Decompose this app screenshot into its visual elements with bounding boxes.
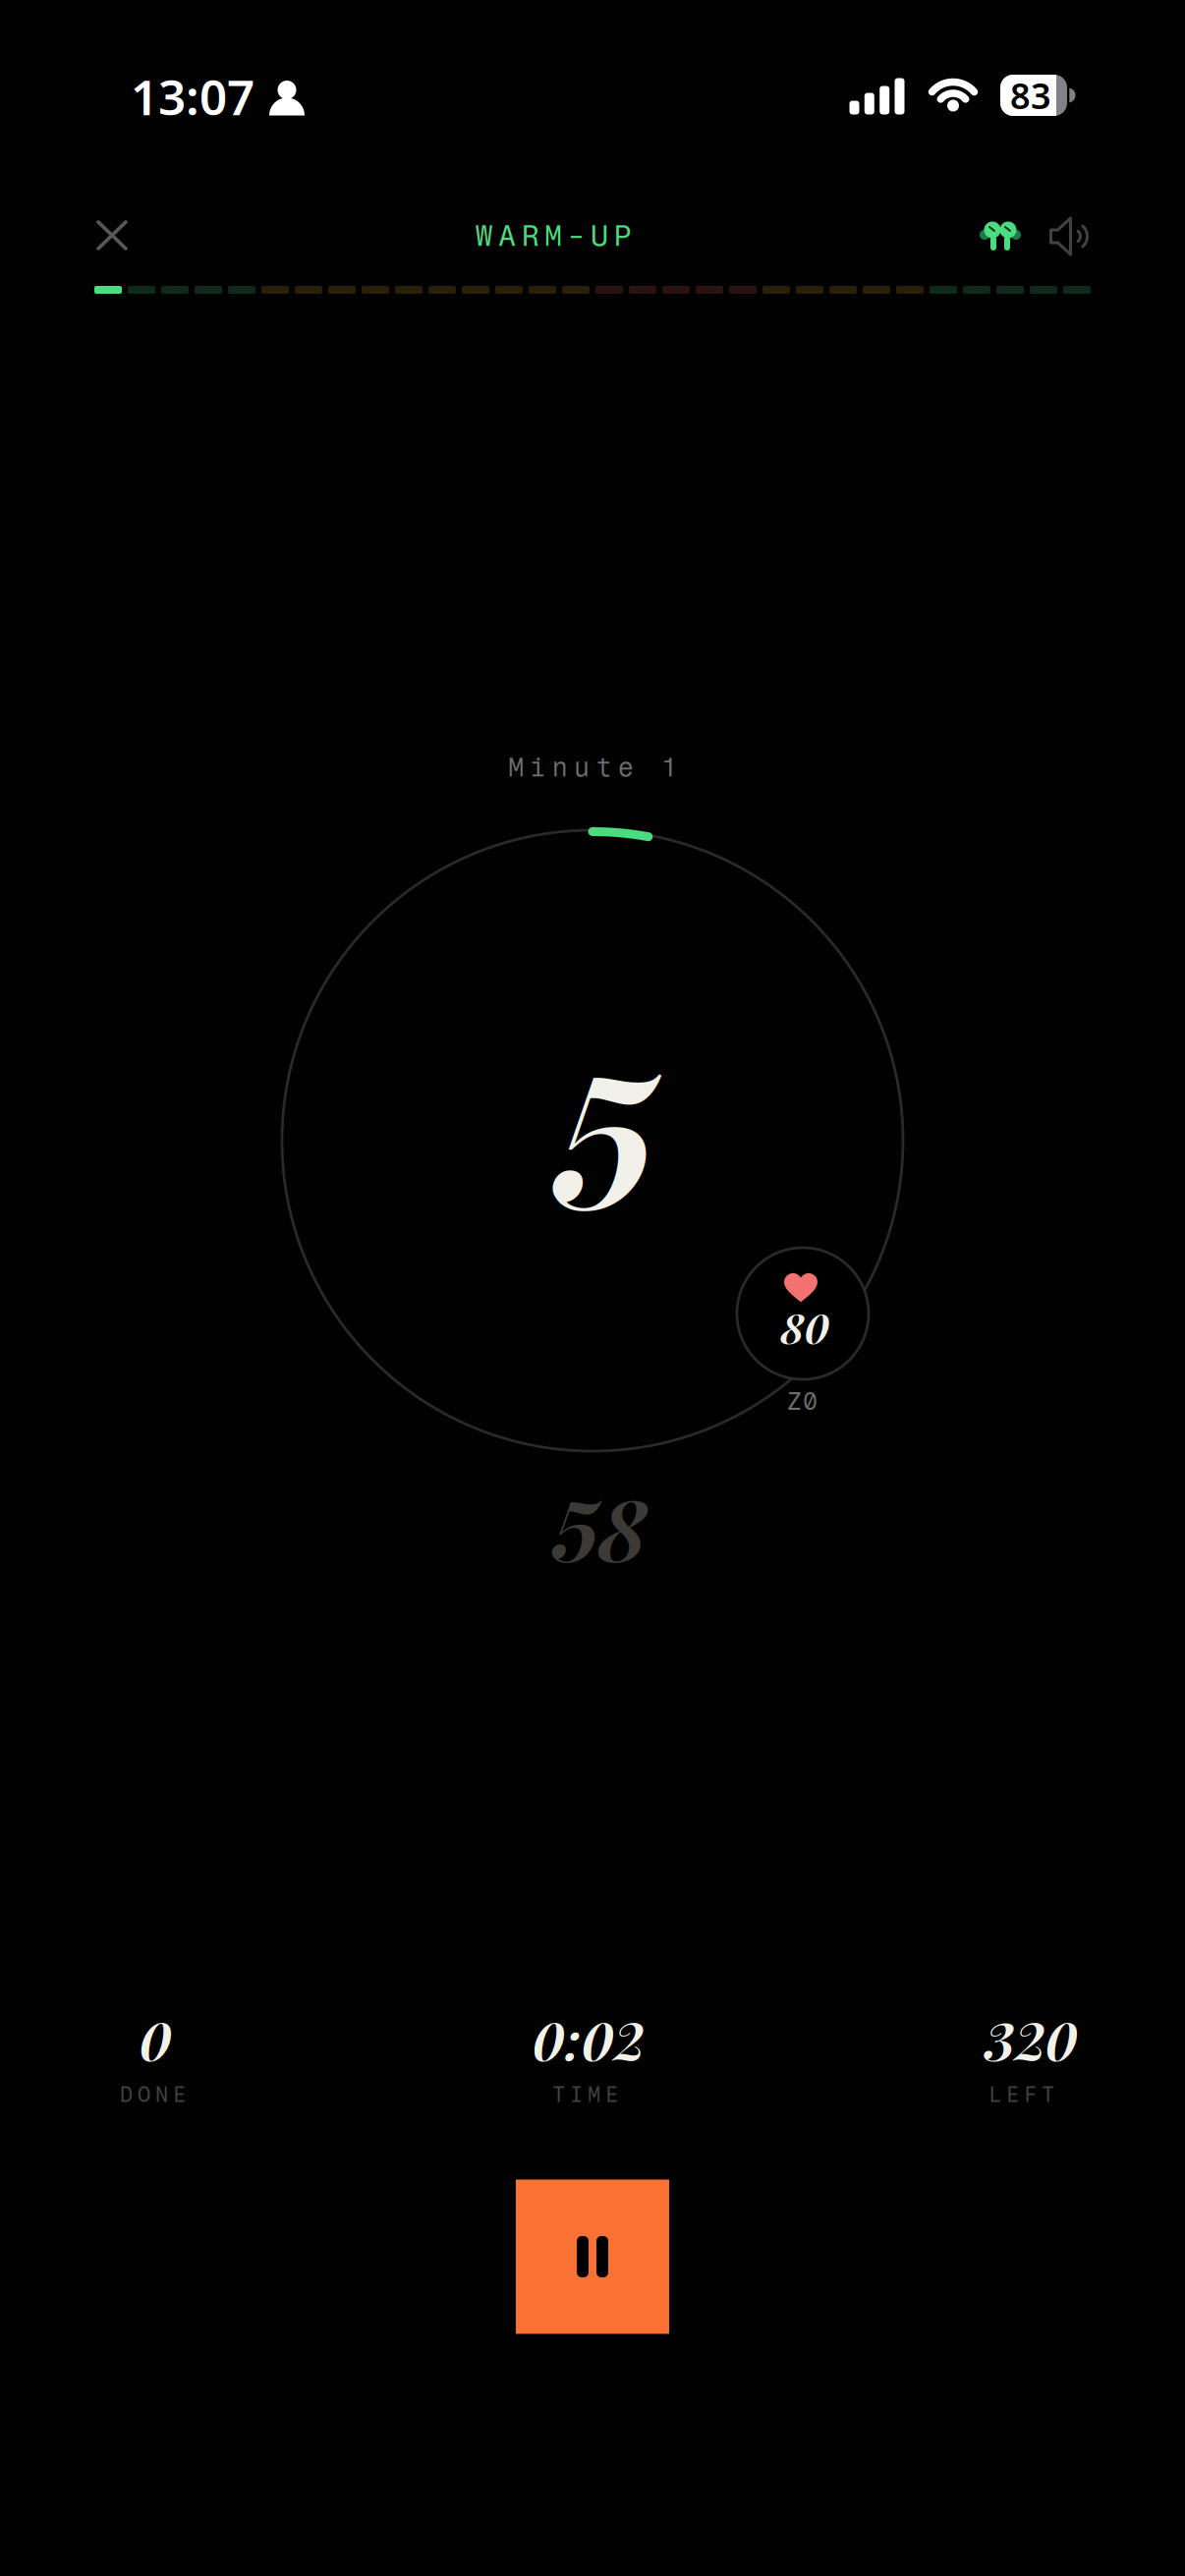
staticText: Minute 1 xyxy=(508,752,677,783)
staticText: 320 xyxy=(984,2004,1077,2074)
staticText: 0:02 xyxy=(532,2004,644,2074)
button[interactable]: Pause xyxy=(516,2180,669,2334)
staticText: 83 xyxy=(1010,72,1051,119)
staticText: LEFT xyxy=(988,2082,1054,2107)
staticText: 13:07 xyxy=(131,64,254,128)
staticText: TIME xyxy=(552,2082,618,2107)
staticText: WARM-UP xyxy=(475,218,631,253)
staticText: 0 xyxy=(139,2004,171,2074)
staticText: 80 xyxy=(781,1300,830,1354)
staticText: DONE xyxy=(120,2082,186,2107)
staticText: 5 xyxy=(553,1009,655,1255)
staticText: 58 xyxy=(552,1470,647,1583)
button[interactable]: Close xyxy=(85,208,140,263)
button[interactable]: Sound xyxy=(1049,217,1090,256)
button[interactable]: Audio output xyxy=(979,220,1022,253)
staticText: Z0 xyxy=(787,1386,818,1416)
